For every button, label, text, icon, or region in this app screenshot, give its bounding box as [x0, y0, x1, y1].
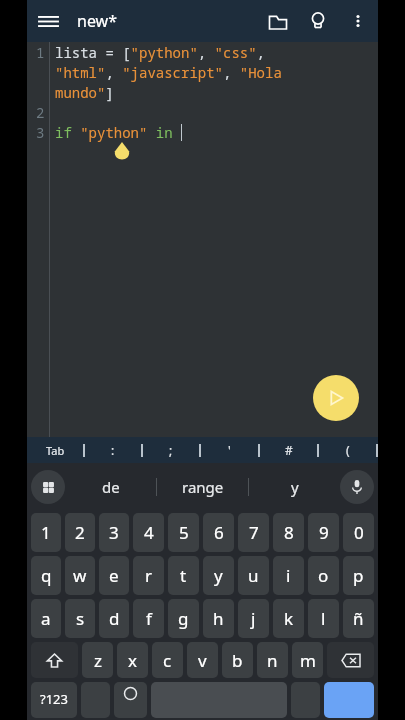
button[interactable]: Tab [27, 437, 83, 463]
staticText: "html", "javascript", "Hola [55, 63, 282, 82]
button[interactable]: # [260, 437, 317, 463]
staticText: 2 [36, 103, 45, 122]
button[interactable]: 1 [31, 513, 61, 552]
staticText: b [232, 649, 243, 672]
staticText: new* [77, 10, 117, 32]
staticText: a [41, 607, 51, 630]
button[interactable]: g [168, 599, 199, 638]
button[interactable]: ; [143, 437, 199, 463]
button[interactable]: d [99, 599, 129, 638]
button[interactable]: 0 [343, 513, 374, 552]
button[interactable]: o [308, 556, 339, 595]
button[interactable]: Enter [324, 682, 374, 718]
staticText: j [251, 607, 256, 630]
button[interactable]: ' [201, 437, 258, 463]
button[interactable]: Period [291, 682, 320, 718]
button[interactable]: Run [313, 375, 359, 421]
button[interactable]: ( [319, 437, 376, 463]
staticText: ' [228, 442, 231, 458]
staticText: k [284, 607, 294, 630]
staticText: z [94, 649, 102, 672]
button[interactable]: v [187, 642, 218, 678]
staticText: 3 [36, 123, 45, 142]
staticText: p [353, 564, 364, 587]
button[interactable]: y [249, 463, 340, 511]
button[interactable]: 4 [133, 513, 164, 552]
staticText: de [102, 477, 120, 497]
staticText: 0 [354, 521, 364, 544]
staticText: q [41, 564, 52, 587]
button[interactable]: Emoji [114, 682, 147, 718]
staticText: : [111, 442, 115, 458]
button[interactable]: l [308, 599, 339, 638]
button[interactable]: Symbols [31, 682, 77, 718]
staticText: if "python" in [55, 123, 181, 142]
button[interactable]: z [82, 642, 113, 678]
button[interactable]: a [31, 599, 61, 638]
button[interactable]: k [273, 599, 304, 638]
button[interactable]: Voice input [340, 470, 374, 504]
staticText: u [248, 564, 259, 587]
staticText: o [318, 564, 329, 587]
button[interactable]: s [65, 599, 95, 638]
staticText: l [321, 607, 326, 630]
button[interactable]: u [238, 556, 269, 595]
button[interactable]: q [31, 556, 61, 595]
staticText: ; [169, 442, 173, 458]
button[interactable]: m [292, 642, 323, 678]
button[interactable]: Backspace [327, 642, 374, 678]
button[interactable]: j [238, 599, 269, 638]
button[interactable]: x [117, 642, 148, 678]
button[interactable]: 5 [168, 513, 199, 552]
staticText: m [300, 649, 316, 672]
staticText: lista = ["python", "css", [55, 43, 265, 62]
button[interactable]: 6 [203, 513, 234, 552]
button[interactable]: w [65, 556, 95, 595]
button[interactable]: Menu [27, 0, 69, 42]
staticText: c [163, 649, 172, 672]
button[interactable]: 9 [308, 513, 339, 552]
button[interactable]: p [343, 556, 374, 595]
staticText: 1 [41, 521, 51, 544]
button[interactable]: 8 [273, 513, 304, 552]
button[interactable]: f [133, 599, 164, 638]
button[interactable]: b [222, 642, 253, 678]
button[interactable]: Open folder [258, 1, 298, 41]
staticText: 4 [144, 521, 154, 544]
button[interactable]: c [152, 642, 183, 678]
button[interactable]: r [133, 556, 164, 595]
staticText: e [109, 564, 119, 587]
staticText: d [109, 607, 120, 630]
staticText: n [267, 649, 278, 672]
staticText: 1 [36, 43, 45, 62]
button[interactable]: 7 [238, 513, 269, 552]
staticText: y [214, 564, 223, 587]
button[interactable]: y [203, 556, 234, 595]
button[interactable]: range [157, 463, 248, 511]
button[interactable]: h [203, 599, 234, 638]
button[interactable]: de [65, 463, 156, 511]
button[interactable]: Hint [298, 1, 338, 41]
button[interactable]: n [257, 642, 288, 678]
staticText: v [198, 649, 207, 672]
staticText: mundo"] [55, 83, 114, 102]
button[interactable]: More options [338, 1, 378, 41]
button[interactable]: t [168, 556, 199, 595]
staticText: 7 [249, 521, 259, 544]
staticText: t [180, 564, 187, 587]
button[interactable]: Toolbar [31, 470, 65, 504]
staticText: 9 [319, 521, 329, 544]
staticText: r [145, 564, 153, 587]
button[interactable]: ñ [343, 599, 374, 638]
staticText: Tab [46, 443, 65, 458]
button[interactable]: 3 [99, 513, 129, 552]
staticText: f [146, 607, 152, 630]
button[interactable]: Comma [81, 682, 110, 718]
button[interactable]: e [99, 556, 129, 595]
button[interactable]: i [273, 556, 304, 595]
button[interactable]: : [85, 437, 141, 463]
button[interactable]: 2 [65, 513, 95, 552]
button[interactable]: Shift [31, 642, 78, 678]
staticText: ?123 [40, 690, 68, 708]
